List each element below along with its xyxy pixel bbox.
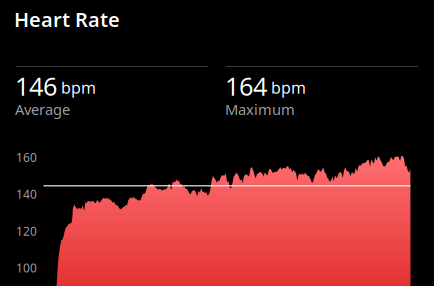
staticText: Maximum [225, 100, 295, 119]
staticText: bpm [61, 77, 96, 98]
button[interactable]: 164 [225, 69, 417, 122]
staticText: Heart Rate [14, 6, 120, 33]
staticText: bpm [271, 77, 306, 98]
staticText: 160 [16, 149, 37, 165]
staticText: 146 [15, 69, 57, 103]
staticText: 100 [16, 260, 37, 276]
button[interactable]: 146 [15, 69, 207, 122]
staticText: 164 [225, 69, 267, 103]
staticText: Average [15, 100, 70, 119]
staticText: 140 [16, 186, 37, 202]
staticText: 120 [16, 223, 37, 239]
